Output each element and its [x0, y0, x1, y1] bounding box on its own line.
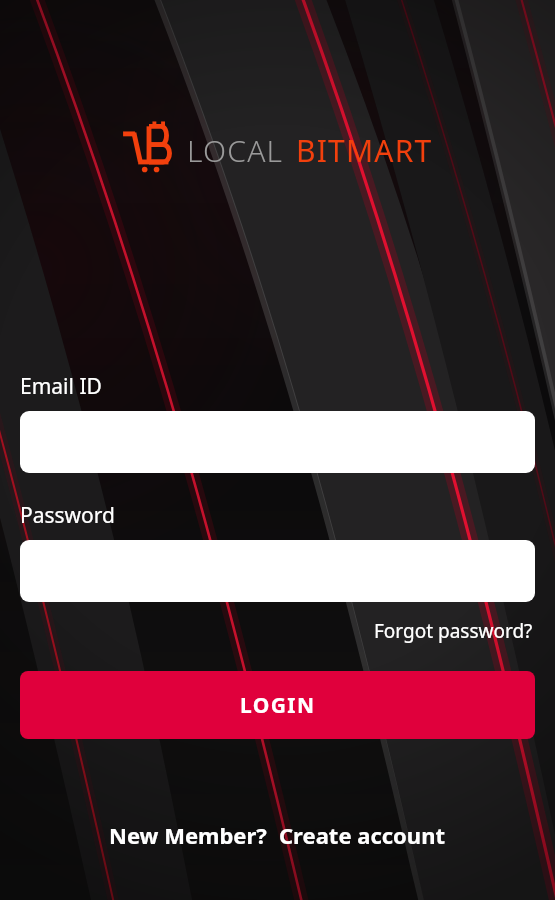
button[interactable]: LOGIN [20, 671, 535, 739]
button[interactable]: Create account [279, 820, 446, 850]
staticText: Email ID [20, 372, 102, 401]
button[interactable]: Forgot password? [372, 615, 535, 647]
staticText: BITMART [296, 130, 433, 171]
staticText: LOCAL [187, 130, 284, 171]
button[interactable] [20, 411, 535, 473]
staticText: LOGIN [240, 691, 316, 720]
staticText: Password [20, 501, 115, 530]
staticText: New Member? [109, 820, 267, 850]
staticText: Forgot password? [374, 618, 533, 644]
button[interactable] [20, 540, 535, 602]
staticText: Create account [279, 820, 446, 850]
